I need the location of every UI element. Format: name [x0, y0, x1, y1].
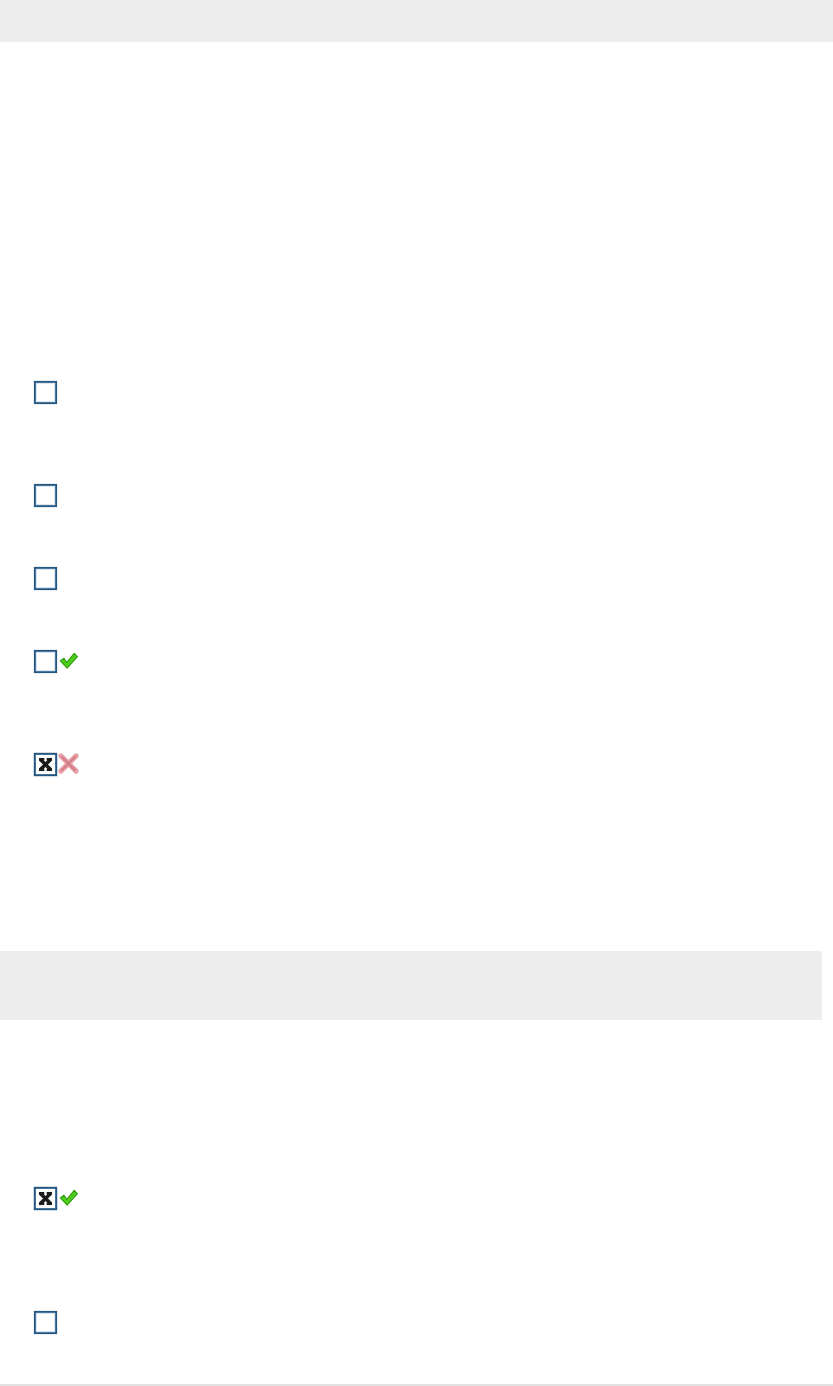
button[interactable]: Option 3 checkbox [34, 567, 57, 590]
button[interactable]: Option 1 checkbox [34, 381, 57, 404]
button[interactable]: Valid [59, 1188, 78, 1207]
button[interactable]: Option 2 checkbox [34, 484, 57, 507]
button[interactable]: Valid [59, 651, 78, 670]
button[interactable]: Image unavailable [34, 1187, 57, 1210]
button[interactable]: Invalid [59, 754, 78, 773]
button[interactable]: Option 4 checkbox [34, 650, 57, 673]
button[interactable]: Confirm checkbox [34, 1311, 57, 1334]
button[interactable]: Option 5 image unavailable [34, 753, 57, 776]
